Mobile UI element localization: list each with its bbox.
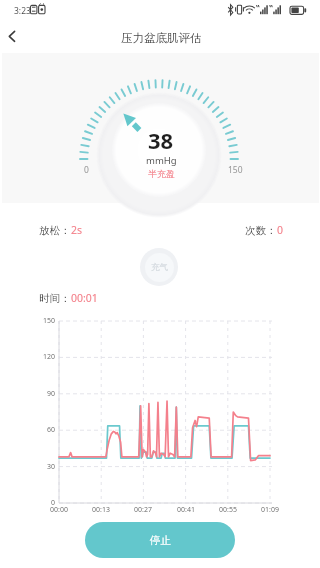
staticText: 150 (228, 164, 243, 176)
button[interactable]: Back (0, 22, 24, 53)
staticText: 放松： (39, 224, 71, 237)
staticText: 00:55 (219, 505, 237, 515)
staticText: 次数： (245, 224, 277, 237)
staticText: 时间： (39, 292, 71, 305)
button[interactable]: 停止 (85, 522, 235, 558)
staticText: 90 (47, 389, 56, 399)
staticText: 0 (84, 164, 89, 176)
staticText: 半充盈 (148, 168, 175, 179)
staticText: 停止 (150, 534, 171, 547)
staticText: 00:00 (50, 505, 68, 515)
staticText: 0 (277, 223, 284, 237)
staticText: 30 (47, 462, 56, 472)
staticText: 充气 (151, 262, 168, 273)
staticText: 00:13 (92, 505, 110, 515)
staticText: 压力盆底肌评估 (121, 31, 202, 45)
staticText: 0 (51, 498, 56, 508)
staticText: 150 (43, 316, 56, 326)
staticText: 120 (43, 352, 56, 362)
staticText: 3:23 (14, 5, 31, 17)
staticText: mmHg (146, 154, 177, 167)
staticText: 2s (71, 223, 83, 237)
button[interactable]: 充气 (140, 248, 178, 286)
staticText: 01:09 (261, 505, 279, 515)
staticText: 00:01 (71, 291, 98, 305)
staticText: 38 (148, 125, 174, 155)
staticText: 00:27 (134, 505, 152, 515)
staticText: 00:41 (177, 505, 195, 515)
staticText: 60 (47, 425, 56, 435)
